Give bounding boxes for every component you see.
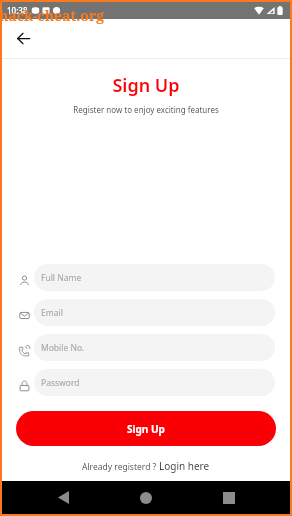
button[interactable]: Recent apps xyxy=(203,481,255,514)
staticText: Password xyxy=(41,377,80,389)
button[interactable]: Password xyxy=(34,369,275,396)
staticText: Email xyxy=(41,307,63,319)
staticText: Full Name xyxy=(41,272,82,284)
staticText: Mobile No. xyxy=(41,342,85,354)
button[interactable]: Home xyxy=(120,481,172,514)
staticText: Login here xyxy=(159,459,210,473)
button[interactable]: Back xyxy=(10,26,36,52)
staticText: Register now to enjoy exciting features xyxy=(2,104,290,115)
button[interactable]: Back xyxy=(37,481,89,514)
staticText: 10:38 xyxy=(7,5,28,16)
staticText: hack-cheat.org xyxy=(0,6,105,25)
button[interactable]: Full Name xyxy=(34,264,275,291)
button[interactable]: Login here xyxy=(159,459,210,473)
button[interactable]: Mobile No. xyxy=(34,334,275,361)
button[interactable]: Email xyxy=(34,299,275,326)
staticText: Already registerd ? xyxy=(82,461,159,473)
staticText: Sign Up xyxy=(127,422,165,436)
staticText: Sign Up xyxy=(2,73,290,98)
button[interactable]: Sign Up xyxy=(16,411,276,446)
